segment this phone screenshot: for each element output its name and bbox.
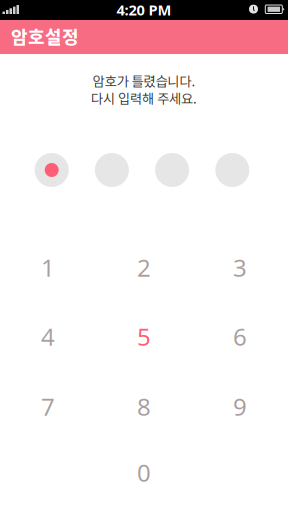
- staticText: 7: [41, 391, 55, 422]
- button[interactable]: 0: [96, 438, 192, 506]
- button[interactable]: 6: [192, 302, 288, 370]
- button[interactable]: 9: [192, 372, 288, 440]
- staticText: 5: [137, 321, 151, 352]
- button[interactable]: 5: [96, 302, 192, 370]
- staticText: 3: [233, 252, 247, 283]
- staticText: 0: [137, 457, 151, 488]
- button[interactable]: 7: [0, 372, 96, 440]
- button[interactable]: 8: [96, 372, 192, 440]
- staticText: 8: [137, 391, 151, 422]
- staticText: 암호가 틀렸습니다.: [92, 71, 195, 90]
- button[interactable]: 1: [0, 233, 96, 301]
- staticText: 6: [233, 321, 247, 352]
- staticText: 2: [137, 252, 151, 283]
- button[interactable]: 3: [192, 233, 288, 301]
- staticText: 9: [233, 391, 247, 422]
- staticText: 암호설정: [11, 23, 79, 49]
- button[interactable]: 2: [96, 233, 192, 301]
- staticText: 4:20 PM: [116, 0, 171, 19]
- staticText: 1: [41, 252, 55, 283]
- button[interactable]: 4: [0, 302, 96, 370]
- staticText: 다시 입력해 주세요.: [91, 88, 197, 108]
- staticText: 4: [41, 321, 55, 352]
